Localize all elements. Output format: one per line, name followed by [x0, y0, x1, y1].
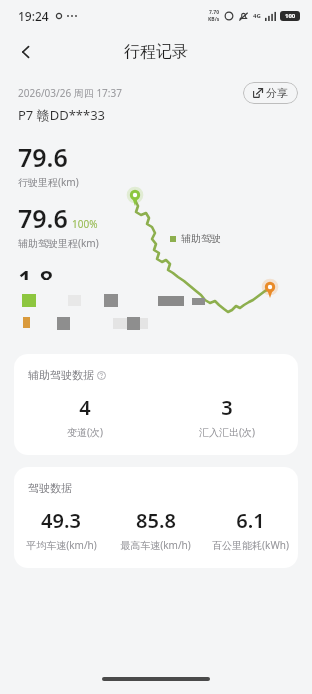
staticText: 平均车速(km/h)	[26, 538, 97, 552]
staticText: 4G	[253, 12, 261, 20]
staticText: 百公里能耗(kWh)	[212, 538, 289, 552]
button[interactable]: 分享	[243, 82, 298, 104]
staticText: 辅助驾驶	[181, 232, 221, 245]
staticText: 100	[285, 12, 296, 20]
staticText: 最高车速(km/h)	[120, 538, 191, 552]
button[interactable]: Back	[8, 34, 44, 70]
staticText: 2026/03/26 周四 17:37	[18, 86, 122, 100]
button[interactable]: 驾驶数据	[14, 467, 298, 568]
button[interactable]: 辅助驾驶数据	[14, 354, 298, 455]
staticText: 79.6	[18, 201, 68, 235]
staticText: 49.3	[41, 507, 81, 534]
staticText: 汇入汇出(次)	[199, 425, 255, 439]
staticText: 3	[221, 394, 233, 421]
staticText: 行程记录	[124, 42, 188, 62]
staticText: P7 赣DD***33	[18, 106, 106, 124]
staticText: 驾驶数据	[28, 481, 72, 495]
staticText: 分享	[266, 86, 288, 100]
staticText: 100%	[72, 217, 98, 231]
staticText: 19:24	[18, 8, 49, 24]
staticText: KB/s	[208, 16, 220, 23]
staticText: 辅助驾驶数据	[28, 368, 94, 382]
staticText: 79.6	[18, 140, 68, 174]
staticText: 4	[79, 394, 91, 421]
staticText: 1.8	[18, 262, 54, 280]
staticText: 6.1	[236, 507, 265, 534]
staticText: 7.70	[209, 9, 219, 16]
staticText: 85.8	[136, 507, 176, 534]
staticText: 变道(次)	[67, 425, 103, 439]
staticText: 行驶里程(km)	[18, 175, 79, 189]
staticText: 辅助驾驶里程(km)	[18, 236, 99, 250]
